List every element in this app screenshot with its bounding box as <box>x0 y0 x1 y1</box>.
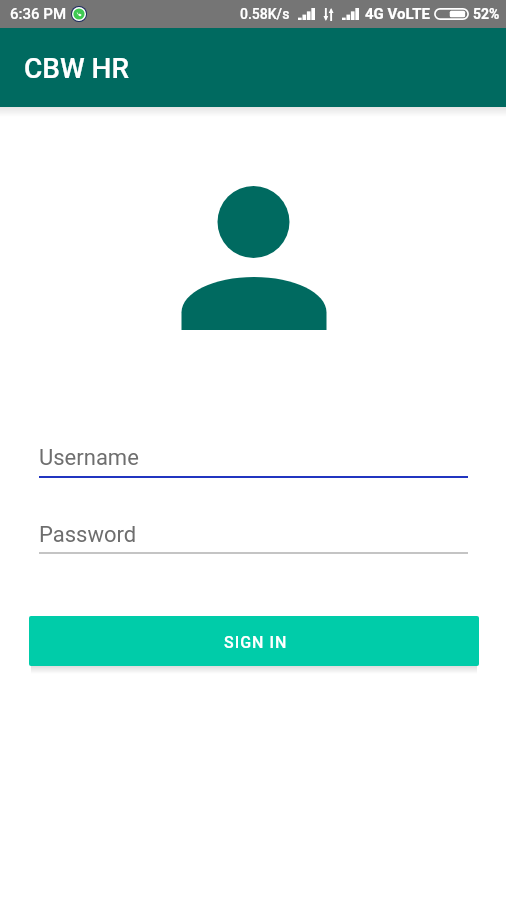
other: Mobile signal <box>298 8 315 20</box>
staticText: 0.58K/s <box>240 6 290 22</box>
staticText: 6:36 PM <box>10 5 67 23</box>
other: User profile avatar <box>180 186 326 331</box>
staticText: CBW HR <box>24 52 129 85</box>
button[interactable]: SIGN IN <box>29 616 479 666</box>
other: Data transfer <box>323 8 334 21</box>
other: Battery 52 percent <box>434 8 469 20</box>
staticText: Username <box>39 445 139 471</box>
button[interactable]: Password <box>39 522 468 554</box>
button[interactable]: Username <box>39 445 468 478</box>
staticText: Password <box>39 522 137 548</box>
staticText: SIGN IN <box>224 633 288 652</box>
other: Mobile signal <box>342 8 359 20</box>
staticText: 52% <box>473 6 500 22</box>
other: WhatsApp notification <box>71 6 87 22</box>
staticText: 4G VoLTE <box>365 5 430 23</box>
